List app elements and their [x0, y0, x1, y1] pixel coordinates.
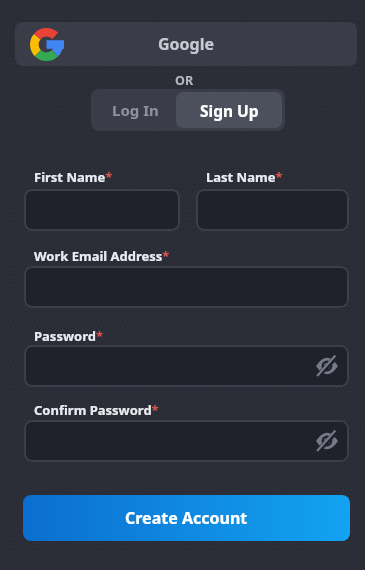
staticText: Sign Up: [200, 100, 259, 121]
staticText: OR: [175, 72, 194, 89]
staticText: Create Account: [125, 507, 248, 529]
staticText: Last Name*: [206, 168, 283, 186]
staticText: Work Email Address*: [34, 247, 170, 265]
button[interactable]: Google: [15, 22, 357, 66]
button[interactable]: [24, 266, 349, 308]
button[interactable]: [196, 189, 349, 231]
button[interactable]: [24, 345, 349, 387]
button[interactable]: [24, 189, 180, 231]
button[interactable]: Log In: [94, 92, 176, 128]
staticText: Google: [158, 33, 215, 55]
staticText: Confirm Password*: [34, 401, 159, 419]
button[interactable]: [24, 420, 349, 462]
staticText: First Name*: [34, 168, 113, 186]
button[interactable]: Sign Up: [176, 92, 282, 128]
staticText: Password*: [34, 327, 103, 345]
staticText: Log In: [112, 100, 159, 120]
button[interactable]: Create Account: [23, 495, 350, 541]
